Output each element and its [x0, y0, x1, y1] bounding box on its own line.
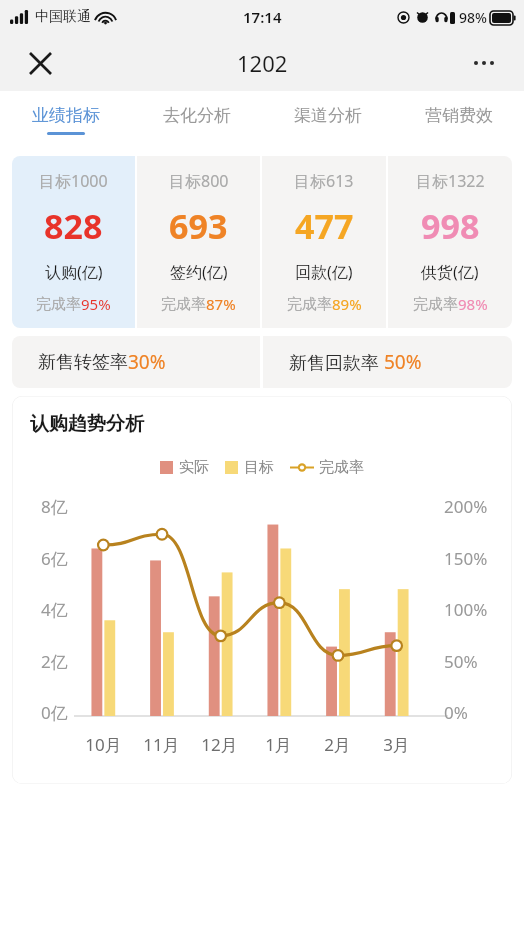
- staticText: 150%: [444, 547, 488, 570]
- staticText: 完成率: [287, 295, 332, 314]
- staticText: 签约(亿): [170, 261, 228, 283]
- staticText: 1202: [237, 48, 288, 78]
- button[interactable]: 目标1000: [12, 156, 135, 328]
- staticText: 95%: [81, 294, 111, 314]
- button[interactable]: 目标613: [262, 156, 386, 328]
- button[interactable]: 去化分析: [131, 91, 262, 148]
- button[interactable]: 新售转签率: [12, 336, 260, 388]
- staticText: 认购(亿): [45, 261, 103, 283]
- staticText: 8亿: [41, 495, 68, 518]
- staticText: 认购趋势分析: [30, 412, 144, 436]
- staticText: 200%: [444, 495, 488, 518]
- staticText: 目标800: [169, 170, 229, 192]
- staticText: 目标613: [294, 170, 354, 192]
- staticText: 100%: [444, 598, 488, 621]
- staticText: 0亿: [41, 701, 68, 724]
- staticText: 12月: [201, 733, 238, 756]
- staticText: 回款(亿): [295, 261, 353, 283]
- staticText: 供货(亿): [421, 261, 479, 283]
- staticText: 目标: [244, 458, 274, 477]
- button[interactable]: 营销费效: [393, 91, 524, 148]
- staticText: 1月: [265, 733, 292, 756]
- staticText: 3月: [383, 733, 410, 756]
- staticText: 中国联通: [35, 8, 91, 26]
- button[interactable]: More options: [460, 39, 508, 87]
- staticText: 新售回款率: [289, 350, 384, 375]
- staticText: 10月: [85, 733, 122, 756]
- staticText: 完成率: [319, 458, 364, 477]
- staticText: 89%: [332, 294, 362, 314]
- staticText: 目标1000: [39, 170, 108, 192]
- staticText: 完成率: [161, 295, 206, 314]
- staticText: 目标1322: [416, 170, 485, 192]
- staticText: 30%: [128, 349, 166, 375]
- staticText: 去化分析: [163, 105, 231, 126]
- button[interactable]: 业绩指标: [0, 91, 131, 148]
- staticText: 98%: [459, 8, 487, 27]
- staticText: 6亿: [41, 547, 68, 570]
- staticText: 998: [421, 203, 480, 249]
- staticText: 实际: [179, 458, 209, 477]
- staticText: 2亿: [41, 650, 68, 673]
- staticText: 50%: [444, 650, 478, 673]
- button[interactable]: 目标1322: [388, 156, 512, 328]
- staticText: 完成率: [36, 295, 81, 314]
- staticText: 477: [295, 203, 354, 249]
- staticText: 2月: [324, 733, 351, 756]
- button[interactable]: Close: [16, 39, 64, 87]
- staticText: 50%: [384, 349, 422, 375]
- staticText: 完成率: [413, 295, 458, 314]
- staticText: 98%: [458, 294, 488, 314]
- staticText: 87%: [206, 294, 236, 314]
- staticText: 17:14: [243, 7, 282, 27]
- staticText: 业绩指标: [32, 105, 100, 126]
- staticText: 渠道分析: [294, 105, 362, 126]
- staticText: 693: [169, 203, 228, 249]
- staticText: 新售转签率: [38, 351, 128, 374]
- staticText: 828: [44, 203, 103, 249]
- staticText: 4亿: [41, 598, 68, 621]
- staticText: 营销费效: [425, 105, 493, 126]
- staticText: 0%: [444, 701, 468, 724]
- button[interactable]: 目标800: [137, 156, 260, 328]
- button[interactable]: 渠道分析: [262, 91, 393, 148]
- button[interactable]: 新售回款率: [263, 336, 512, 388]
- staticText: 11月: [143, 733, 180, 756]
